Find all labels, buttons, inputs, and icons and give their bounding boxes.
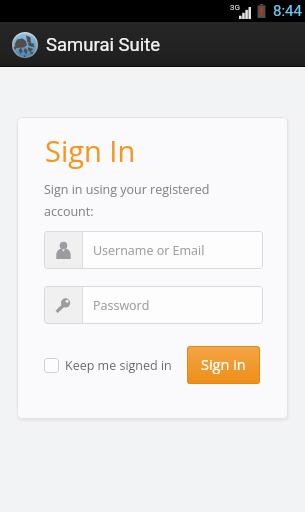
button[interactable]: Password field (44, 286, 263, 324)
button[interactable]: Username or email field (44, 231, 263, 269)
staticText: 8:44 (273, 2, 302, 20)
staticText: Samurai Suite (46, 34, 161, 56)
staticText: Password (93, 297, 150, 314)
staticText: Sign In (45, 131, 136, 170)
staticText: Username or Email (93, 242, 205, 259)
staticText: Keep me signed in (65, 357, 172, 374)
button[interactable]: Samurai Suite home (12, 32, 161, 58)
button[interactable]: Keep me signed in (44, 357, 172, 374)
staticText: 3G (230, 3, 240, 12)
button[interactable]: Sign in (187, 346, 260, 384)
staticText: Sign in (201, 355, 246, 375)
staticText: Sign in using your registered account: (44, 181, 210, 220)
